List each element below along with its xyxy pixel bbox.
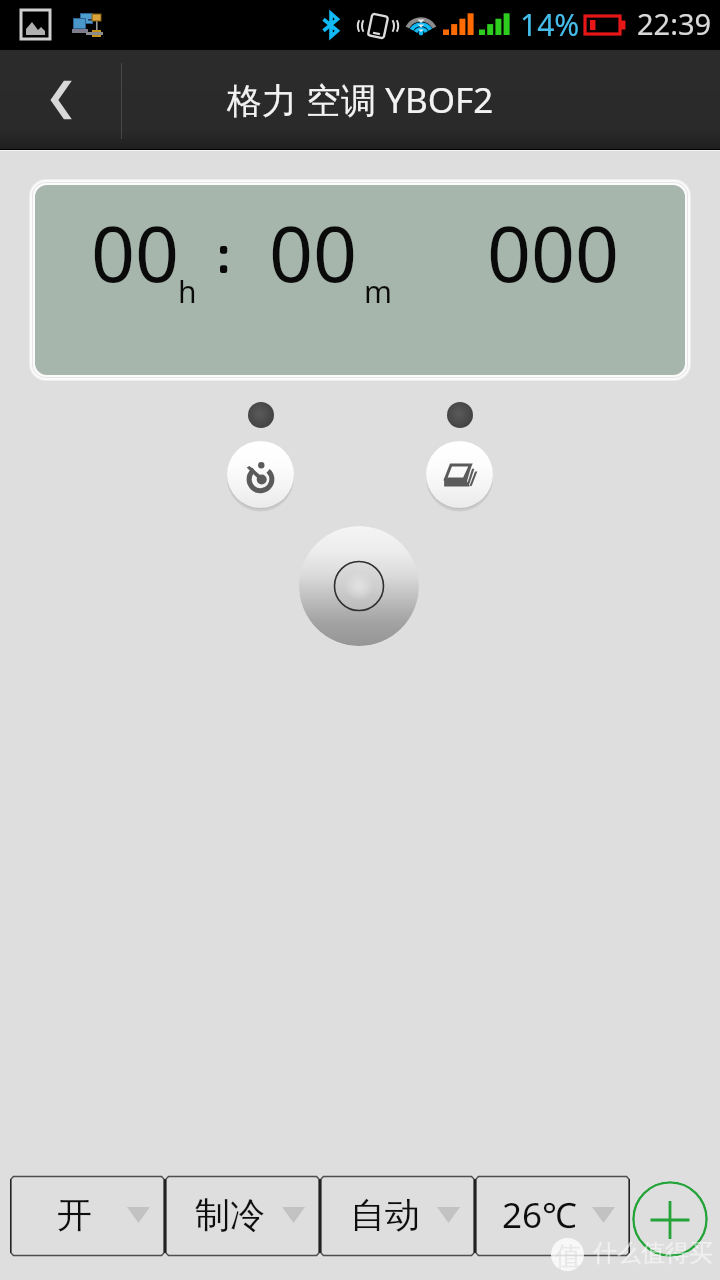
button[interactable]: Power: [299, 526, 419, 646]
staticText: h: [178, 271, 197, 312]
staticText: 格力 空调 YBOF2: [227, 76, 494, 124]
staticText: 22:39: [637, 4, 712, 43]
staticText: 开: [57, 1193, 92, 1237]
button[interactable]: Back: [0, 50, 121, 150]
staticText: 值: [555, 1240, 581, 1273]
staticText: 自动: [350, 1193, 420, 1237]
staticText: m: [364, 271, 393, 312]
staticText: 14%: [520, 4, 580, 45]
button[interactable]: Timer: [227, 441, 294, 508]
button[interactable]: 自动: [320, 1176, 475, 1256]
staticText: 制冷: [195, 1193, 265, 1237]
button[interactable]: 00: [35, 185, 685, 375]
staticText: 00: [91, 200, 180, 305]
button[interactable]: 制冷: [165, 1176, 320, 1256]
button[interactable]: Add: [632, 1181, 708, 1257]
staticText: 000: [487, 200, 620, 305]
button[interactable]: 26℃: [475, 1176, 630, 1256]
button[interactable]: 开: [10, 1176, 165, 1256]
staticText: 什么值得买: [593, 1238, 713, 1268]
staticText: 26℃: [502, 1191, 577, 1239]
button[interactable]: Swing: [426, 441, 493, 508]
staticText: 00: [269, 200, 358, 305]
